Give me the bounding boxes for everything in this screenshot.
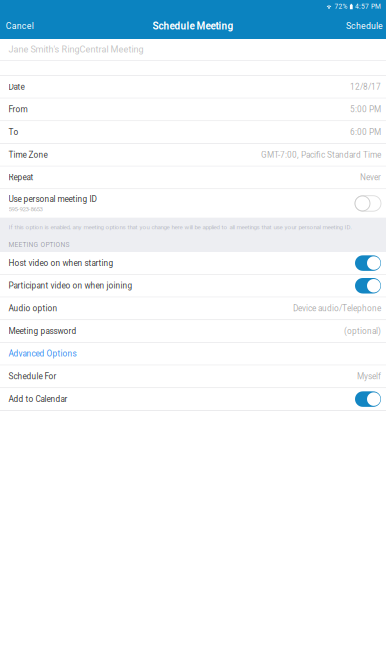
staticText: Time Zone (8, 150, 47, 160)
staticText: 12/8/17 (350, 82, 381, 92)
staticText: Never (360, 173, 381, 182)
staticText: Repeat (8, 173, 33, 182)
button[interactable]: Time Zone (0, 144, 386, 166)
button[interactable]: Cancel (3, 17, 37, 35)
staticText: If this option is enabled, any meeting o… (8, 224, 352, 231)
staticText (347, 3, 349, 10)
staticText: 4:57 PM (353, 3, 381, 10)
staticText: Myself (357, 372, 381, 381)
staticText: To (8, 127, 18, 137)
staticText: Schedule For (8, 372, 56, 381)
button[interactable]: Repeat (0, 167, 386, 188)
staticText: 5:00 PM (350, 105, 381, 114)
button[interactable]: Schedule (343, 17, 386, 35)
staticText: Add to Calendar (8, 394, 67, 404)
staticText: 6:00 PM (350, 127, 381, 137)
button[interactable]: Jane Smith's RingCentral Meeting (0, 39, 386, 60)
button[interactable]: From (0, 99, 386, 120)
staticText: Schedule (346, 21, 383, 31)
staticText: Date (8, 82, 24, 92)
staticText: Cancel (6, 21, 34, 31)
button[interactable]: Host video on when starting (0, 252, 386, 274)
staticText: 595-923-8653 (8, 205, 42, 213)
staticText: Jane Smith's RingCentral Meeting (8, 44, 143, 55)
staticText: Device audio/Telephone (293, 304, 381, 313)
staticText: Participant video on when joining (8, 281, 132, 291)
button[interactable]: Audio option (0, 297, 386, 319)
button[interactable]: Meeting password (0, 320, 386, 342)
staticText: Use personal meeting ID (8, 194, 96, 204)
button[interactable]: Advanced Options (0, 343, 386, 365)
staticText: MEETING OPTIONS (8, 241, 69, 249)
button[interactable]: To (0, 121, 386, 143)
staticText: Schedule Meeting (152, 20, 233, 32)
button[interactable]: Use personal meeting ID (0, 189, 386, 218)
staticText: 72% (332, 3, 347, 10)
button[interactable]: Schedule For (0, 365, 386, 387)
staticText: GMT-7:00, Pacific Standard Time (261, 150, 381, 160)
staticText: Meeting password (8, 326, 76, 336)
button[interactable]: Add to Calendar (0, 388, 386, 410)
staticText: (optional) (344, 326, 381, 336)
button[interactable]: Date (0, 76, 386, 98)
staticText: Advanced Options (8, 349, 76, 359)
button[interactable]: Participant video on when joining (0, 275, 386, 297)
staticText: Host video on when starting (8, 258, 113, 268)
staticText: From (8, 105, 27, 114)
staticText: Audio option (8, 304, 57, 313)
